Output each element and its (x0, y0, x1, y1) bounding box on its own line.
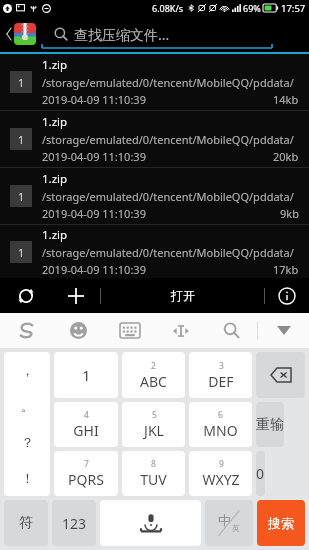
staticText: 2019-04-09 11:10:39 (42, 262, 146, 277)
staticText: 打开 (171, 288, 195, 303)
button[interactable]: Move cursor (155, 313, 206, 348)
staticText: 。 (21, 398, 34, 414)
staticText: 2019-04-09 11:10:39 (42, 206, 146, 221)
staticText: /storage/emulated/0/tencent/MobileQQ/pdd… (42, 132, 299, 147)
staticText: 9kb (280, 206, 299, 221)
staticText: ABC (140, 372, 167, 391)
staticText: 6.08K/s (152, 2, 184, 14)
staticText: 123 (62, 514, 87, 533)
button[interactable]: 1 (54, 352, 118, 398)
button[interactable]: 1 (0, 225, 309, 278)
staticText: PQRS (68, 470, 104, 489)
staticText: 2019-04-09 11:10:39 (42, 149, 146, 164)
staticText: 20kb (273, 149, 299, 164)
staticText: WXYZ (202, 470, 240, 489)
staticText: 8 (151, 458, 156, 470)
staticText: 6 (218, 409, 223, 421)
staticText: GHI (73, 421, 99, 440)
staticText: 5 (152, 409, 157, 421)
staticText: 1.zip (42, 171, 68, 187)
button[interactable]: 123 (52, 500, 96, 546)
button[interactable]: Refresh (0, 278, 52, 313)
button[interactable]: 6 (189, 402, 252, 447)
button[interactable]: Search (206, 313, 257, 348)
button[interactable]: 0 (256, 451, 265, 496)
button[interactable]: 打开 (101, 278, 264, 313)
button[interactable]: 2 (122, 352, 185, 398)
staticText: 14kb (273, 92, 299, 107)
button[interactable]: Emoji (52, 313, 104, 348)
button[interactable]: 1 (0, 168, 309, 224)
staticText: 查找压缩文件... (74, 25, 170, 44)
button[interactable]: Chinese English toggle (205, 500, 253, 546)
button[interactable]: More (258, 313, 309, 348)
button[interactable]: ！ (4, 460, 50, 496)
staticText: 1 (18, 132, 25, 147)
button[interactable]: 搜索 (257, 500, 305, 546)
button[interactable]: 4 (54, 402, 118, 447)
staticText: 4 (84, 409, 89, 421)
staticText: 2019-04-09 11:10:39 (42, 92, 146, 107)
staticText: 17:57 (281, 2, 306, 15)
staticText: 9 (219, 458, 224, 470)
button[interactable]: 5 (122, 402, 185, 447)
staticText: 17kb (273, 262, 299, 277)
button[interactable]: 。 (4, 388, 50, 424)
button[interactable]: Sogou input (0, 313, 52, 348)
staticText: 7 (84, 458, 89, 470)
button[interactable]: 重输 (256, 402, 284, 447)
staticText: 1 (82, 365, 91, 385)
staticText: 0 (256, 464, 265, 483)
button[interactable]: Info (265, 278, 309, 313)
staticText: 英 (232, 523, 240, 533)
staticText: 1 (18, 245, 25, 260)
staticText: 2 (151, 360, 156, 372)
staticText: ， (21, 362, 34, 378)
staticText: 1.zip (42, 227, 68, 243)
staticText: /storage/emulated/0/tencent/MobileQQ/pdd… (42, 189, 299, 204)
staticText: /storage/emulated/0/tencent/MobileQQ/pdd… (42, 245, 299, 260)
button[interactable]: Add (52, 278, 100, 313)
staticText: ？ (21, 434, 34, 450)
button[interactable]: Voice input and space (100, 500, 201, 546)
staticText: DEF (208, 372, 234, 391)
button[interactable]: Delete (256, 352, 305, 398)
staticText: JKL (144, 421, 164, 440)
button[interactable]: 8 (122, 451, 185, 496)
button[interactable]: Keyboard layout (104, 313, 155, 348)
button[interactable]: Back (0, 16, 42, 52)
button[interactable]: 9 (189, 451, 252, 496)
staticText: /storage/emulated/0/tencent/MobileQQ/pdd… (42, 75, 299, 90)
button[interactable]: 1 (0, 111, 309, 167)
button[interactable]: 符 (4, 500, 48, 546)
staticText: 符 (19, 514, 33, 532)
staticText: 重输 (256, 416, 284, 434)
staticText: TUV (140, 470, 167, 489)
staticText: 3 (219, 360, 224, 372)
button[interactable]: ， (4, 352, 50, 388)
staticText: 中 (218, 512, 231, 528)
button[interactable]: 7 (54, 451, 118, 496)
staticText: 1.zip (42, 57, 68, 73)
button[interactable]: ？ (4, 424, 50, 460)
staticText: MNO (203, 421, 238, 440)
staticText: 搜索 (268, 515, 294, 531)
staticText: ！ (21, 470, 34, 486)
staticText: 1 (18, 75, 25, 90)
button[interactable]: 1 (0, 54, 309, 110)
staticText: 1 (18, 189, 25, 204)
button[interactable]: 3 (189, 352, 252, 398)
staticText: 1.zip (42, 114, 68, 130)
staticText: 69% (243, 2, 261, 14)
